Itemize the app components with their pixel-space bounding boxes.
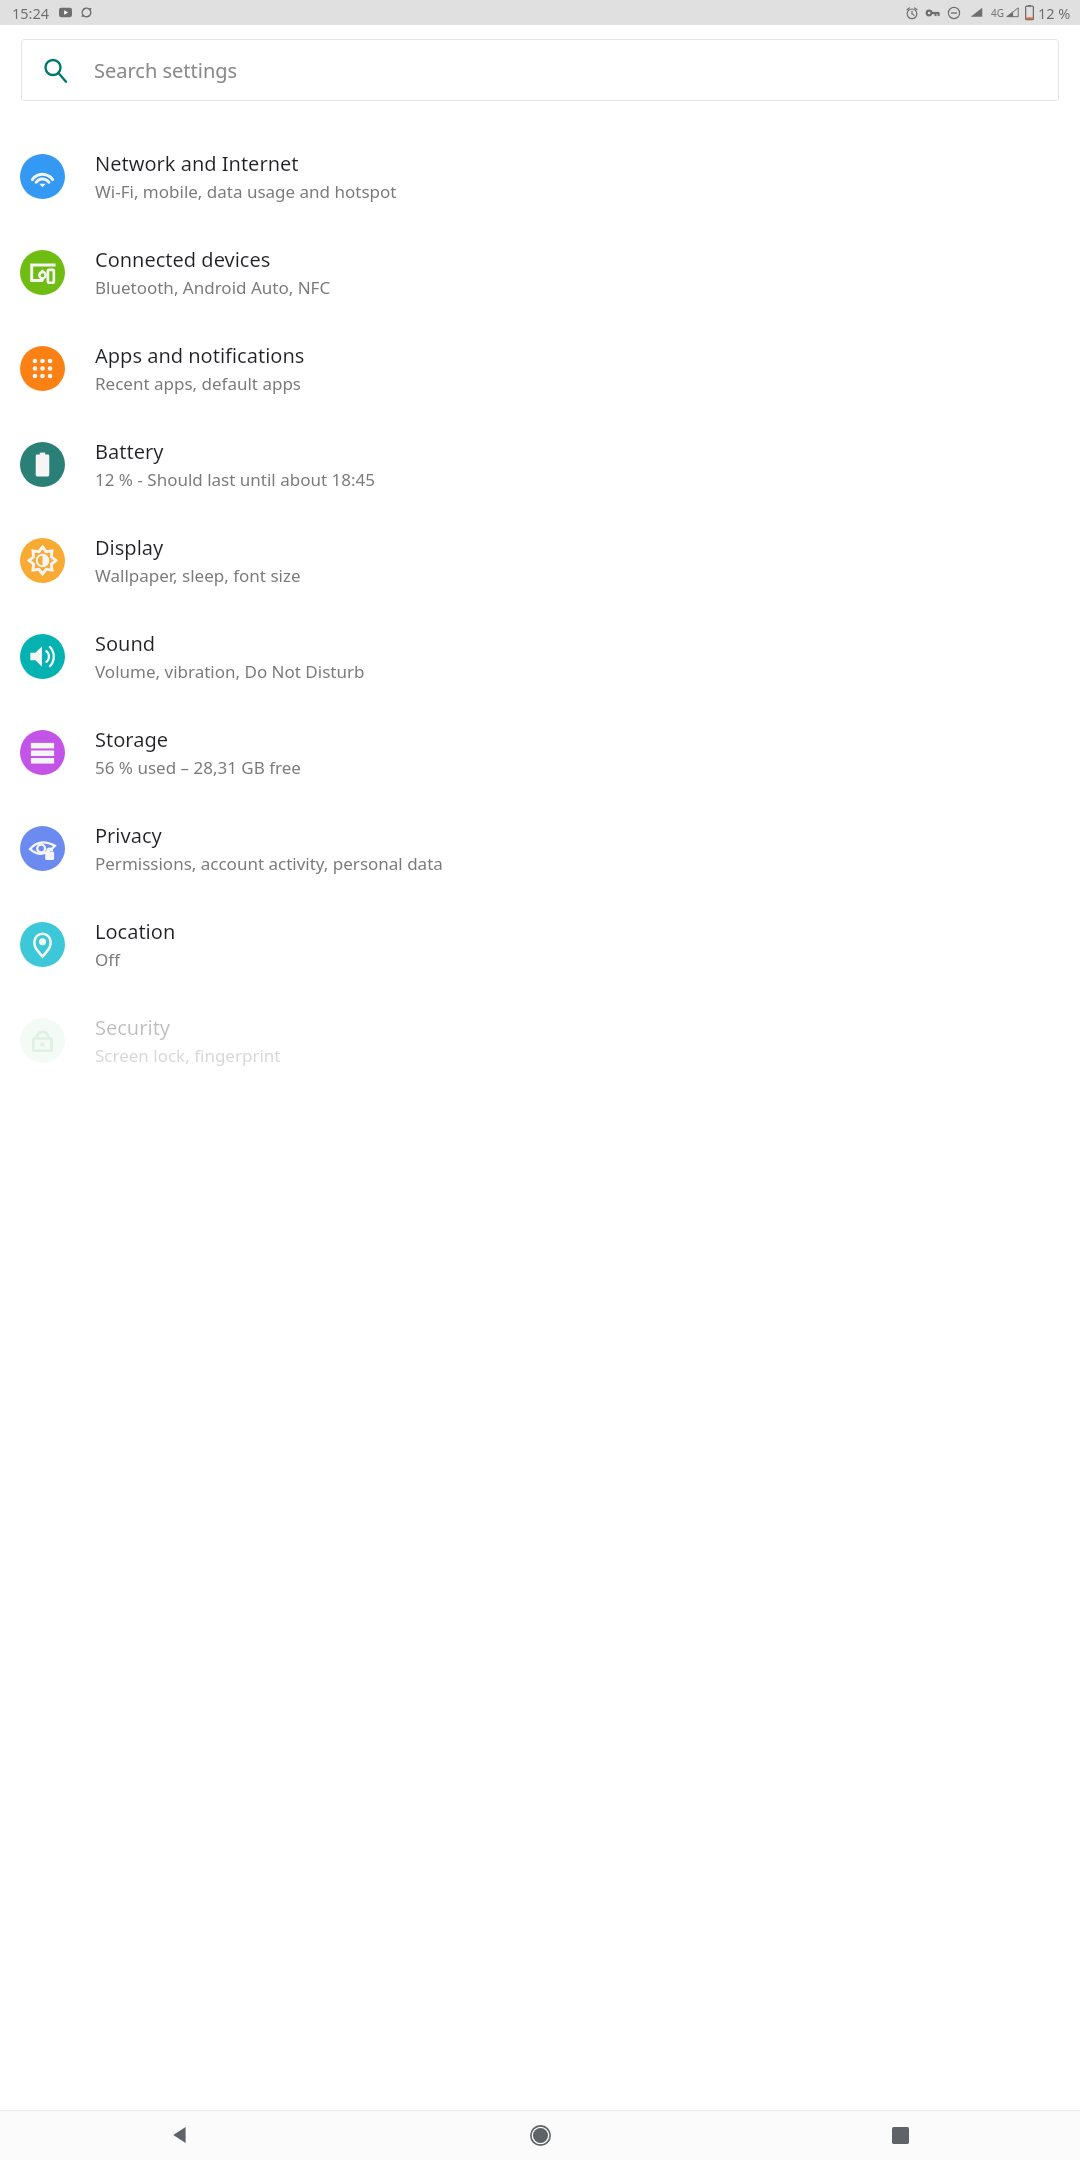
staticText: Volume, vibration, Do Not Disturb [95, 660, 365, 683]
button[interactable]: Apps and notifications [0, 320, 1080, 416]
staticText: 12 % [1038, 3, 1071, 23]
staticText: Location [95, 918, 176, 945]
button[interactable]: Battery [0, 416, 1080, 512]
staticText: Off [95, 948, 120, 971]
staticText: Wi-Fi, mobile, data usage and hotspot [95, 180, 397, 203]
button[interactable]: Security [0, 992, 1080, 1088]
button[interactable]: Network and Internet [0, 128, 1080, 224]
staticText: Battery [95, 438, 164, 465]
staticText: Connected devices [95, 246, 271, 273]
staticText: Storage [95, 726, 168, 753]
button[interactable]: Search settings [21, 39, 1059, 101]
staticText: Network and Internet [95, 150, 299, 177]
staticText: Security [95, 1014, 171, 1041]
button[interactable]: Privacy [0, 800, 1080, 896]
staticText: 15:24 [12, 3, 50, 23]
staticText: Bluetooth, Android Auto, NFC [95, 276, 331, 299]
button[interactable]: Storage [0, 704, 1080, 800]
staticText: 4G [991, 6, 1004, 20]
staticText: Permissions, account activity, personal … [95, 852, 443, 875]
staticText: 12 % - Should last until about 18:45 [95, 468, 375, 491]
button[interactable]: Recent apps [720, 2110, 1080, 2160]
staticText: 56 % used – 28,31 GB free [95, 756, 301, 779]
staticText: Sound [95, 630, 156, 657]
button[interactable]: Home [360, 2110, 720, 2160]
staticText: Display [95, 534, 164, 561]
button[interactable]: Back [0, 2110, 360, 2160]
staticText: Search settings [94, 57, 238, 84]
staticText: Recent apps, default apps [95, 372, 302, 395]
staticText: Screen lock, fingerprint [95, 1044, 281, 1067]
button[interactable]: Sound [0, 608, 1080, 704]
staticText: Privacy [95, 822, 162, 849]
button[interactable]: Display [0, 512, 1080, 608]
staticText: Apps and notifications [95, 342, 305, 369]
button[interactable]: Location [0, 896, 1080, 992]
button[interactable]: Connected devices [0, 224, 1080, 320]
staticText: Wallpaper, sleep, font size [95, 564, 301, 587]
